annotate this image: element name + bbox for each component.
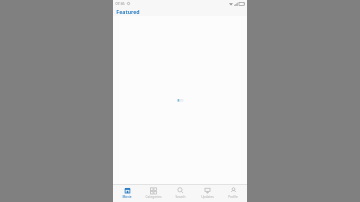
staticText: Updates <box>201 195 214 199</box>
staticText: Featured <box>116 8 140 15</box>
staticText: Profile <box>228 195 238 199</box>
button[interactable]: Updates <box>194 185 220 202</box>
other: Updates <box>204 187 211 194</box>
staticText: Search <box>175 195 186 199</box>
button[interactable]: Profile <box>220 185 246 202</box>
button[interactable]: Categories <box>140 185 166 202</box>
other: Movie <box>124 187 131 194</box>
staticText: Categories <box>145 195 162 199</box>
staticText: Movie <box>122 195 132 199</box>
other: Categories <box>150 187 157 194</box>
other: Search <box>177 187 184 194</box>
staticText: 07:36 <box>115 1 125 6</box>
other: Profile <box>230 187 237 194</box>
button[interactable]: Movie <box>114 185 140 202</box>
button[interactable]: Search <box>167 185 193 202</box>
